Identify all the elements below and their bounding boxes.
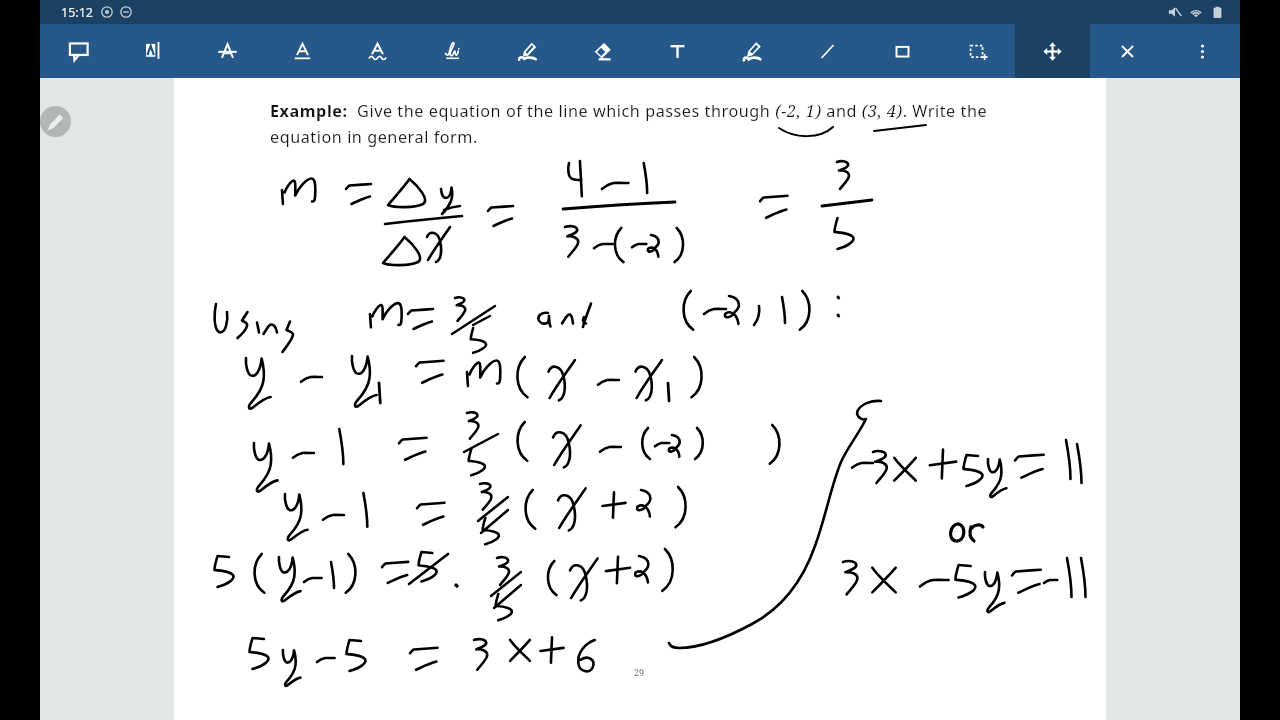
button[interactable]: Close	[1090, 24, 1165, 78]
button[interactable]: Eraser	[565, 24, 640, 78]
button[interactable]: Underline	[265, 24, 340, 78]
button[interactable]: Ink pen	[490, 24, 565, 78]
button[interactable]: Text	[640, 24, 715, 78]
staticText: 29	[634, 666, 645, 678]
button[interactable]: Draw	[40, 106, 71, 137]
button[interactable]: Highlighter	[715, 24, 790, 78]
button[interactable]: Comment	[40, 24, 115, 78]
button[interactable]: Select area	[940, 24, 1015, 78]
button[interactable]: Line	[790, 24, 865, 78]
button[interactable]: Rectangle	[865, 24, 940, 78]
button[interactable]: Strikethrough	[190, 24, 265, 78]
button[interactable]: Text box	[115, 24, 190, 78]
staticText: 15:12	[61, 4, 93, 21]
button[interactable]: Signature	[415, 24, 490, 78]
button[interactable]: Squiggly underline	[340, 24, 415, 78]
button[interactable]: More options	[1165, 24, 1240, 78]
staticText: Example: Give the equation of the line w…	[270, 100, 1012, 148]
button[interactable]: Move	[1015, 24, 1090, 78]
